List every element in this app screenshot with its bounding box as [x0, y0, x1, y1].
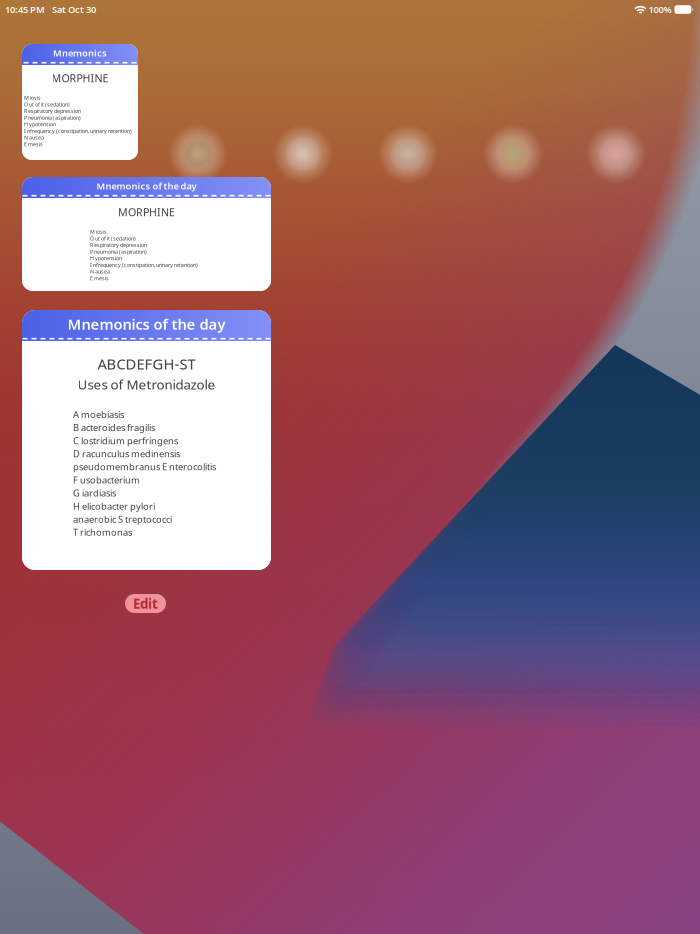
- staticText: Sat Oct 30: [52, 3, 96, 16]
- staticText: Mnemonics of the day: [96, 180, 196, 192]
- staticText: Mnemonics: [53, 47, 107, 59]
- staticText: M iosis O ut of it (sedation) R espirato…: [90, 228, 198, 282]
- staticText: A moebiasis B acteroides fragilis C lost…: [73, 408, 216, 538]
- staticText: M iosis O ut of it (sedation) R espirato…: [24, 94, 132, 148]
- staticText: ABCDEFGH-ST: [97, 354, 195, 373]
- staticText: Uses of Metronidazole: [77, 375, 215, 393]
- button[interactable]: Edit: [125, 594, 166, 613]
- staticText: 10:45 PM: [5, 3, 45, 16]
- staticText: Mnemonics of the day: [67, 314, 225, 334]
- staticText: MORPHINE: [118, 205, 175, 219]
- staticText: Edit: [133, 595, 158, 612]
- staticText: MORPHINE: [51, 71, 108, 85]
- staticText: 100%: [648, 3, 671, 16]
